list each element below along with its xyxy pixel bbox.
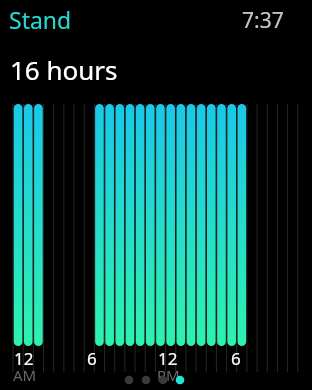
staticText: 7:37 (242, 6, 284, 35)
staticText: 6 (231, 347, 241, 370)
staticText: 16 hours (10, 52, 118, 87)
staticText: 12 (14, 347, 34, 370)
staticText: Stand (9, 4, 72, 35)
staticText: 6 (87, 347, 97, 370)
staticText: AM (13, 365, 37, 385)
button[interactable]: Stand (9, 4, 72, 35)
button[interactable]: Stand hours chart (0, 0, 312, 390)
staticText: PM (157, 365, 180, 385)
staticText: 12 (158, 347, 178, 370)
